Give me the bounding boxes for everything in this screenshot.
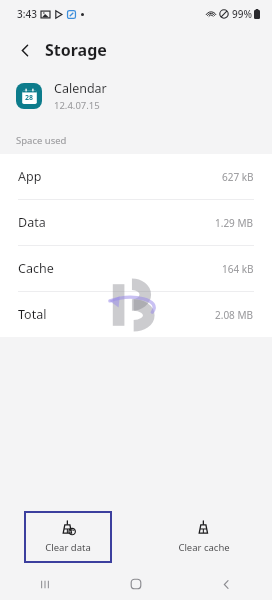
button[interactable]: Data	[0, 200, 272, 246]
button[interactable]: 28	[0, 72, 272, 120]
staticText: Space used	[16, 134, 67, 147]
button[interactable]: Recents	[0, 568, 90, 600]
button[interactable]: Clear cache	[160, 511, 248, 563]
staticText: 2.08 MB	[215, 308, 254, 322]
button[interactable]: App	[0, 154, 272, 200]
button[interactable]: Total	[0, 292, 272, 337]
staticText: App	[18, 168, 42, 185]
staticText: 3:43	[17, 7, 37, 21]
staticText: Clear data	[45, 541, 91, 554]
staticText: Clear cache	[178, 541, 230, 554]
button[interactable]: Cache	[0, 246, 272, 292]
button[interactable]: Home	[90, 568, 181, 600]
staticText: 99%	[232, 7, 252, 21]
staticText: Data	[18, 214, 46, 231]
button[interactable]: Clear data	[24, 511, 112, 563]
staticText: 1.29 MB	[215, 216, 254, 230]
staticText: 28	[25, 93, 34, 103]
staticText: Calendar	[54, 80, 107, 97]
staticText: 12.4.07.15	[54, 99, 100, 112]
button[interactable]: Back	[8, 33, 42, 67]
staticText: Total	[18, 306, 47, 323]
staticText: Cache	[18, 260, 54, 277]
staticText: 627 kB	[222, 170, 254, 184]
button[interactable]: Back	[181, 568, 272, 600]
staticText: Storage	[45, 39, 107, 61]
staticText: 164 kB	[222, 262, 254, 276]
